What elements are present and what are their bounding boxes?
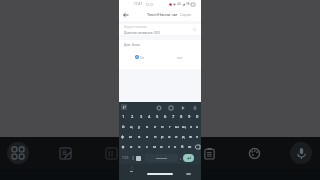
button[interactable]: р (159, 132, 166, 142)
staticText: 98 (186, 2, 190, 6)
button[interactable]: Themes (245, 144, 263, 162)
button[interactable]: Comma (130, 152, 136, 164)
button[interactable]: б (179, 142, 186, 152)
button[interactable]: Notes (56, 144, 74, 162)
staticText: Домена название: 003 (124, 30, 160, 34)
button[interactable]: GIF (155, 104, 162, 111)
button[interactable]: Back (119, 8, 132, 21)
staticText: г (169, 124, 171, 130)
button[interactable]: 8 (177, 112, 185, 122)
button[interactable]: н (159, 122, 166, 132)
staticText: ч (138, 144, 141, 150)
staticText: ь (174, 144, 177, 150)
button[interactable]: ы (127, 132, 135, 142)
button[interactable]: Clipboard (200, 144, 218, 162)
button[interactable]: Period (178, 152, 183, 164)
staticText: з (190, 124, 192, 130)
staticText: Текст/Начни чат (147, 12, 178, 17)
staticText: п (154, 134, 157, 140)
staticText: 5 (156, 114, 159, 120)
button[interactable]: п (151, 132, 159, 142)
staticText: к (146, 124, 149, 130)
button[interactable]: ж (187, 132, 194, 142)
button[interactable]: 0 (193, 112, 201, 122)
button[interactable]: Stickers (179, 104, 186, 111)
button[interactable]: Сохран. (180, 13, 193, 17)
staticText: л (175, 134, 178, 140)
staticText: э (196, 134, 199, 140)
staticText: т (168, 144, 170, 150)
button[interactable]: Recent app (102, 144, 120, 162)
button[interactable]: щ (180, 122, 187, 132)
button[interactable]: з (187, 122, 194, 132)
staticText: м (153, 144, 157, 150)
button[interactable]: с (143, 142, 151, 152)
staticText: й (122, 124, 125, 130)
button[interactable]: д (180, 132, 187, 142)
button[interactable]: Space (145, 154, 178, 162)
button[interactable]: г (166, 122, 173, 132)
button[interactable]: а (143, 132, 151, 142)
button[interactable]: э (194, 132, 201, 142)
button[interactable]: Backspace (193, 142, 201, 152)
button[interactable]: к (143, 122, 151, 132)
staticText: ш (175, 124, 179, 130)
staticText: Сохран. (180, 13, 193, 17)
button[interactable]: ш (173, 122, 180, 132)
button[interactable]: 7 (169, 112, 177, 122)
button[interactable]: 5 (153, 112, 161, 122)
button[interactable]: я (127, 142, 135, 152)
button[interactable]: 9 (185, 112, 193, 122)
button[interactable]: 3 (137, 112, 145, 122)
button[interactable]: 1 (119, 112, 128, 122)
button[interactable]: и (158, 142, 165, 152)
button[interactable]: в (135, 132, 143, 142)
staticText: ж (189, 134, 193, 140)
staticText: 9 (188, 114, 191, 120)
button[interactable]: Voice typing (191, 104, 198, 111)
button[interactable]: Shift (119, 142, 127, 152)
button[interactable]: Clipboard (167, 104, 174, 111)
button[interactable]: м (151, 142, 158, 152)
button[interactable]: о (166, 132, 173, 142)
staticText: в (138, 134, 141, 140)
button[interactable]: й (119, 122, 127, 132)
button[interactable]: All apps (7, 142, 29, 164)
staticText: р (161, 134, 164, 140)
button[interactable]: ?123 (121, 152, 130, 164)
button[interactable]: е (151, 122, 159, 132)
button[interactable]: л (173, 132, 180, 142)
button[interactable]: ф (119, 132, 127, 142)
staticText: 8 (180, 114, 183, 120)
button[interactable]: ю (186, 142, 193, 152)
button[interactable]: Keyboard settings (121, 104, 127, 110)
staticText: о (168, 134, 171, 140)
staticText: б (181, 144, 184, 150)
button[interactable]: х (194, 122, 201, 132)
button[interactable]: 4 (145, 112, 153, 122)
button[interactable]: 6 (161, 112, 169, 122)
button[interactable] (133, 53, 140, 60)
staticText: Введите название (124, 25, 147, 29)
button[interactable]: ц (127, 122, 135, 132)
staticText: д (182, 134, 185, 140)
staticText: я (130, 144, 133, 150)
staticText: е (154, 124, 157, 130)
staticText: ы (129, 134, 133, 140)
button[interactable]: т (165, 142, 172, 152)
button[interactable]: 2 (128, 112, 137, 122)
button[interactable]: Enter (183, 154, 194, 162)
button[interactable]: у (135, 122, 143, 132)
button[interactable]: Emoji (136, 156, 141, 161)
staticText: ?123 (122, 156, 129, 160)
button[interactable]: Voice input (290, 142, 312, 164)
button[interactable]: нет (177, 55, 183, 59)
button[interactable]: ь (172, 142, 179, 152)
button[interactable]: Введите название (119, 24, 201, 35)
staticText: 4G (177, 2, 181, 6)
staticText: щ (182, 124, 186, 130)
button[interactable]: ч (135, 142, 143, 152)
staticText: Доп. блок (124, 42, 140, 46)
